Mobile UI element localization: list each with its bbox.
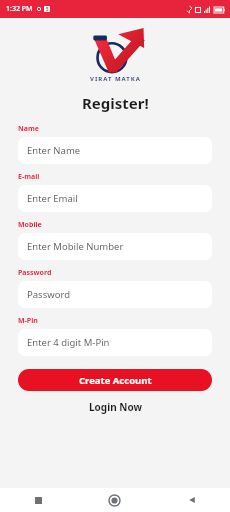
staticText: Mobile	[18, 220, 42, 230]
button[interactable]: Enter Name	[18, 137, 212, 164]
button[interactable]: Home	[76, 488, 153, 512]
button[interactable]: Enter Mobile Number	[18, 233, 212, 260]
staticText: Password	[27, 288, 70, 301]
staticText: Register!	[82, 93, 149, 113]
button[interactable]: Enter Email	[18, 185, 212, 212]
staticText: Enter Name	[27, 144, 81, 157]
button[interactable]: Create Account	[18, 369, 212, 391]
staticText: Enter Email	[27, 192, 78, 205]
staticText: Password	[18, 268, 52, 278]
staticText: Create Account	[79, 374, 152, 387]
staticText: Enter Mobile Number	[27, 240, 124, 253]
staticText: 5	[46, 6, 49, 12]
staticText: Enter 4 digit M-Pin	[27, 336, 110, 349]
staticText: Name	[18, 124, 39, 134]
button[interactable]: Back	[153, 488, 230, 512]
button[interactable]: Password	[18, 281, 212, 308]
staticText: 1:32 PM	[6, 4, 33, 14]
staticText: Login Now	[89, 400, 142, 414]
button[interactable]: Enter 4 digit M-Pin	[18, 329, 212, 356]
button[interactable]: Recent apps	[0, 488, 76, 512]
staticText: M-Pin	[18, 316, 38, 326]
staticText: E-mail	[18, 172, 40, 182]
button[interactable]: Login Now	[0, 400, 230, 414]
staticText: VIRAT MATKA	[90, 75, 141, 83]
